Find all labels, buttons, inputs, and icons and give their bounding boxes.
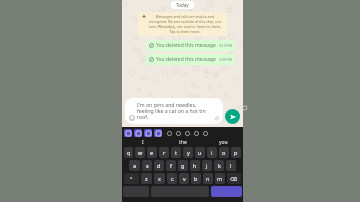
staticText: You deleted this message <box>156 56 216 63</box>
staticText: c <box>171 175 174 182</box>
button[interactable]: More <box>192 129 200 137</box>
button[interactable]: k <box>214 160 224 171</box>
button[interactable]: f <box>166 160 176 171</box>
button[interactable]: r <box>159 147 169 158</box>
button[interactable]: h <box>190 160 200 171</box>
button[interactable]: Messages and calls are end-to-end encryp… <box>138 12 227 36</box>
staticText: m <box>217 175 223 182</box>
staticText: h <box>193 162 197 169</box>
button[interactable]: Tool 1 <box>134 129 142 137</box>
staticText: w <box>138 149 143 156</box>
button[interactable]: You deleted this message <box>146 54 235 65</box>
button[interactable]: m <box>215 173 225 184</box>
staticText: n <box>206 175 210 182</box>
button[interactable]: l <box>226 160 236 171</box>
button[interactable]: t <box>171 147 181 158</box>
button[interactable]: a <box>129 160 140 171</box>
staticText: v <box>183 175 186 182</box>
staticText: p <box>234 149 238 156</box>
button[interactable]: Undo <box>183 129 191 137</box>
button[interactable]: Enter <box>211 186 242 197</box>
staticText: t <box>175 149 177 156</box>
staticText: I <box>142 139 144 146</box>
button[interactable]: y <box>183 147 193 158</box>
button[interactable]: z <box>141 173 152 184</box>
button[interactable]: b <box>191 173 201 184</box>
button[interactable]: Backspace <box>227 173 241 184</box>
button[interactable]: the <box>163 138 203 147</box>
button[interactable]: x <box>154 173 165 184</box>
button[interactable]: Emoji <box>128 114 135 121</box>
button[interactable]: u <box>195 147 205 158</box>
staticText: ⌫ <box>230 176 238 182</box>
button[interactable]: q <box>124 147 133 158</box>
staticText: the <box>179 139 187 146</box>
button[interactable]: Tool 0 <box>124 129 132 137</box>
staticText: l <box>230 162 232 169</box>
staticText: Messages and calls are end-to-end encryp… <box>147 14 223 34</box>
button[interactable]: o <box>219 147 229 158</box>
button[interactable]: p <box>231 147 241 158</box>
button[interactable]: v <box>179 173 189 184</box>
staticText: y <box>187 149 190 156</box>
button[interactable]: e <box>147 147 157 158</box>
button[interactable]: Clipboard <box>174 129 182 137</box>
button[interactable]: Mic <box>201 129 209 137</box>
staticText: Today <box>176 2 189 8</box>
button[interactable]: I <box>122 138 163 147</box>
staticText: g <box>181 162 185 169</box>
staticText: s <box>146 162 149 169</box>
staticText: you <box>219 139 228 146</box>
button[interactable]: Shift <box>124 173 139 184</box>
button[interactable]: i <box>207 147 217 158</box>
button[interactable]: You deleted this message <box>146 40 235 51</box>
staticText: I'm on pins and needles, feeling like a … <box>137 101 211 121</box>
staticText: a <box>133 162 137 169</box>
staticText: k <box>218 162 221 169</box>
button[interactable]: n <box>203 173 213 184</box>
button[interactable]: Emoji <box>125 98 223 124</box>
staticText: r <box>163 149 166 156</box>
staticText: b <box>194 175 198 182</box>
button[interactable]: s <box>142 160 152 171</box>
staticText: j <box>206 162 208 169</box>
button[interactable]: Emoji <box>165 129 173 137</box>
staticText: 3:13 PM <box>219 43 232 48</box>
button[interactable]: Tool 2 <box>144 129 152 137</box>
staticText: z <box>145 175 148 182</box>
staticText: i <box>211 149 213 156</box>
staticText: f <box>170 162 172 169</box>
staticText: q <box>127 149 131 156</box>
staticText: 3:09 PM <box>219 57 232 62</box>
staticText: x <box>158 175 161 182</box>
staticText: You deleted this message <box>156 42 216 49</box>
button[interactable]: d <box>154 160 164 171</box>
button[interactable]: c <box>167 173 177 184</box>
button[interactable]: w <box>135 147 145 158</box>
staticText: ⌃ <box>129 176 134 182</box>
button[interactable]: j <box>202 160 212 171</box>
staticText: o <box>222 149 226 156</box>
button[interactable]: Send <box>225 109 240 124</box>
staticText: d <box>157 162 161 169</box>
button[interactable]: Attach <box>213 114 220 121</box>
button[interactable]: g <box>178 160 188 171</box>
button[interactable]: you <box>203 138 243 147</box>
button[interactable]: Tool 3 <box>154 129 162 137</box>
staticText: u <box>198 149 202 156</box>
staticText: e <box>150 149 154 156</box>
